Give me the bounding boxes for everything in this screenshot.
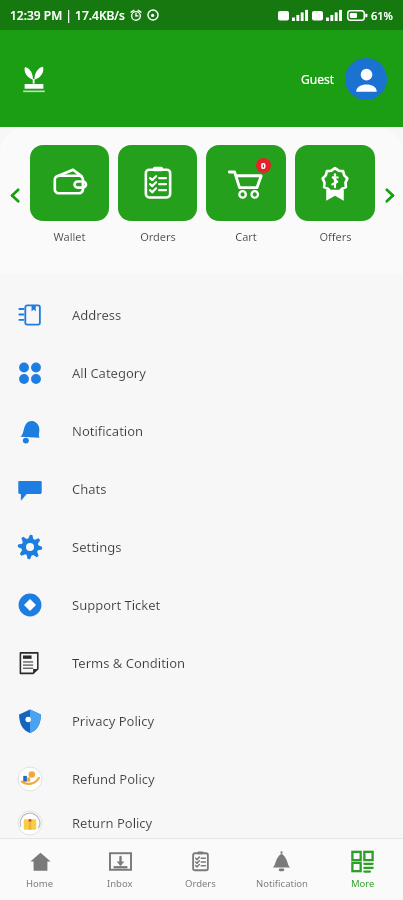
staticText: Refund Policy	[72, 770, 155, 788]
staticText: Privacy Policy	[72, 712, 155, 730]
staticText: Offers	[319, 229, 352, 244]
button[interactable]: Terms & Condition	[0, 634, 403, 692]
button[interactable]: Return Policy	[0, 808, 403, 838]
staticText: Cart	[235, 229, 257, 244]
button[interactable]: Settings	[0, 518, 403, 576]
button[interactable]: Refund Policy	[0, 750, 403, 808]
button[interactable]: Orders	[160, 839, 241, 900]
button[interactable]: Scroll left	[0, 145, 30, 245]
staticText: 12:39 PM | 17.4KB/s	[10, 7, 125, 23]
button[interactable]: Home	[0, 839, 80, 900]
staticText: Orders	[185, 877, 216, 890]
button[interactable]: Offers	[295, 145, 375, 244]
button[interactable]: Support Ticket	[0, 576, 403, 634]
staticText: All Category	[72, 364, 146, 382]
staticText: 61%	[371, 8, 393, 23]
button[interactable]: Address	[0, 286, 403, 344]
button[interactable]: Notification	[241, 839, 322, 900]
button[interactable]: Account	[345, 58, 387, 100]
button[interactable]: ULP home	[16, 61, 52, 97]
staticText: Address	[72, 306, 122, 324]
button[interactable]: Privacy Policy	[0, 692, 403, 750]
staticText: Notification	[256, 877, 308, 890]
staticText: Home	[26, 877, 54, 890]
button[interactable]: Orders	[118, 145, 197, 244]
staticText: Notification	[72, 422, 144, 440]
staticText: Settings	[72, 538, 122, 556]
button[interactable]: All Category	[0, 344, 403, 402]
button[interactable]: Inbox	[80, 839, 160, 900]
button[interactable]: Wallet	[30, 145, 109, 244]
staticText: Support Ticket	[72, 596, 161, 614]
staticText: Chats	[72, 480, 107, 498]
button[interactable]: Notification	[0, 402, 403, 460]
button[interactable]: More	[322, 839, 403, 900]
staticText: Return Policy	[72, 814, 153, 832]
staticText: More	[351, 877, 375, 890]
button[interactable]: Chats	[0, 460, 403, 518]
staticText: Orders	[140, 229, 176, 244]
staticText: Wallet	[53, 229, 86, 244]
staticText: Terms & Condition	[72, 654, 186, 672]
staticText: Guest	[301, 71, 335, 87]
button[interactable]: Scroll right	[375, 145, 403, 245]
staticText: 0	[261, 160, 266, 171]
button[interactable]: 0	[206, 145, 286, 244]
staticText: Inbox	[107, 877, 133, 890]
